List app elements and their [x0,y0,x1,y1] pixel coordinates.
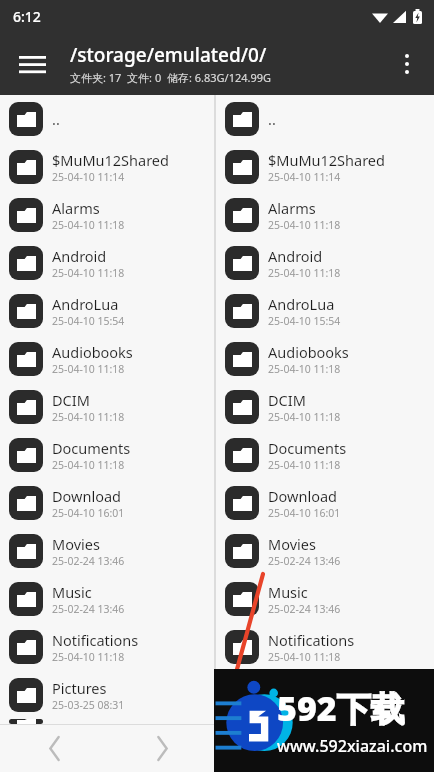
staticText: 592下载 [277,685,405,731]
staticText: Movies [52,534,100,554]
staticText: Pictures [268,678,323,698]
staticText: Movies [268,534,316,554]
staticText: Download [52,486,121,506]
staticText: Notifications [268,630,355,650]
button[interactable]: Alarms [0,191,214,239]
button[interactable]: .. [216,95,434,143]
button[interactable]: Music [216,575,434,623]
button[interactable]: Download [216,479,434,527]
button[interactable]: Notifications [216,623,434,671]
staticText: 25-04-10 11:18 [52,362,125,376]
staticText: Notifications [52,630,139,650]
button[interactable]: AndroLua [216,287,434,335]
staticText: Download [268,486,337,506]
button[interactable]: Open navigation drawer [8,40,56,88]
button[interactable]: Movies [0,527,214,575]
staticText: .. [52,109,60,129]
button[interactable]: DCIM [216,383,434,431]
button[interactable]: Pictures [0,671,214,719]
staticText: 25-03-25 08:31 [52,698,125,712]
staticText: .. [268,109,276,129]
staticText: Audiobooks [52,342,133,362]
staticText: Music [268,582,308,602]
staticText: 25-04-10 11:18 [52,218,125,232]
button[interactable]: More options [385,42,429,86]
staticText: 25-02-24 13:46 [52,554,125,568]
staticText: Pictures [52,678,107,698]
staticText: DCIM [52,390,90,410]
staticText: 25-04-10 11:18 [268,410,341,424]
button[interactable]: Podcasts [216,719,434,724]
button[interactable]: Documents [216,431,434,479]
button[interactable]: Pictures [216,671,434,719]
button[interactable]: AndroLua [0,287,214,335]
button[interactable]: Audiobooks [216,335,434,383]
button[interactable]: Documents [0,431,214,479]
staticText: 25-04-10 11:18 [268,362,341,376]
staticText: 文件夹: 17 文件: 0 储存: 6.83G/124.99G [70,70,272,85]
staticText: Documents [268,438,347,458]
button[interactable]: Music [0,575,214,623]
staticText: Alarms [268,198,316,218]
button[interactable]: Forward [108,724,216,772]
staticText: Audiobooks [268,342,349,362]
button[interactable]: Notifications [0,623,214,671]
staticText: 25-04-10 11:18 [268,266,341,280]
staticText: 25-04-10 11:14 [268,170,341,184]
button[interactable]: Movies [216,527,434,575]
staticText: $MuMu12Shared [52,150,169,170]
staticText: DCIM [268,390,306,410]
button[interactable]: Podcasts [0,719,214,724]
staticText: 25-04-10 11:14 [52,170,125,184]
button[interactable]: .. [0,95,214,143]
staticText: 25-04-10 11:18 [268,218,341,232]
button[interactable]: Audiobooks [0,335,214,383]
staticText: 25-04-10 11:18 [268,650,341,664]
staticText: 25-04-10 11:18 [52,410,125,424]
staticText: 25-04-10 11:18 [268,458,341,472]
staticText: 25-02-24 13:46 [268,554,341,568]
staticText: Alarms [52,198,100,218]
staticText: Podcasts [268,719,329,724]
staticText: Android [52,246,107,266]
button[interactable]: Back [0,724,108,772]
staticText: 25-04-10 11:18 [52,458,125,472]
button[interactable]: Android [0,239,214,287]
staticText: Documents [52,438,131,458]
staticText: Android [268,246,323,266]
button[interactable]: $MuMu12Shared [216,143,434,191]
staticText: AndroLua [52,294,119,314]
staticText: 25-02-24 13:46 [268,602,341,616]
staticText: 6:12 [13,7,41,26]
staticText: 25-04-10 16:01 [52,506,125,520]
staticText: 25-04-10 11:18 [52,266,125,280]
staticText: 25-02-24 13:46 [52,602,125,616]
staticText: www.592xiazai.com [277,735,428,757]
staticText: $MuMu12Shared [268,150,385,170]
staticText: 25-04-10 11:18 [52,650,125,664]
button[interactable]: $MuMu12Shared [0,143,214,191]
button[interactable]: Alarms [216,191,434,239]
button[interactable]: DCIM [0,383,214,431]
staticText: 25-04-10 15:54 [268,314,341,328]
button[interactable]: Download [0,479,214,527]
staticText: 25-04-10 15:54 [52,314,125,328]
button[interactable]: Android [216,239,434,287]
staticText: 25-04-10 16:01 [268,506,341,520]
staticText: Music [52,582,92,602]
staticText: AndroLua [268,294,335,314]
staticText: 25-03-25 08:31 [268,698,341,712]
staticText: /storage/emulated/0/ [70,42,267,68]
